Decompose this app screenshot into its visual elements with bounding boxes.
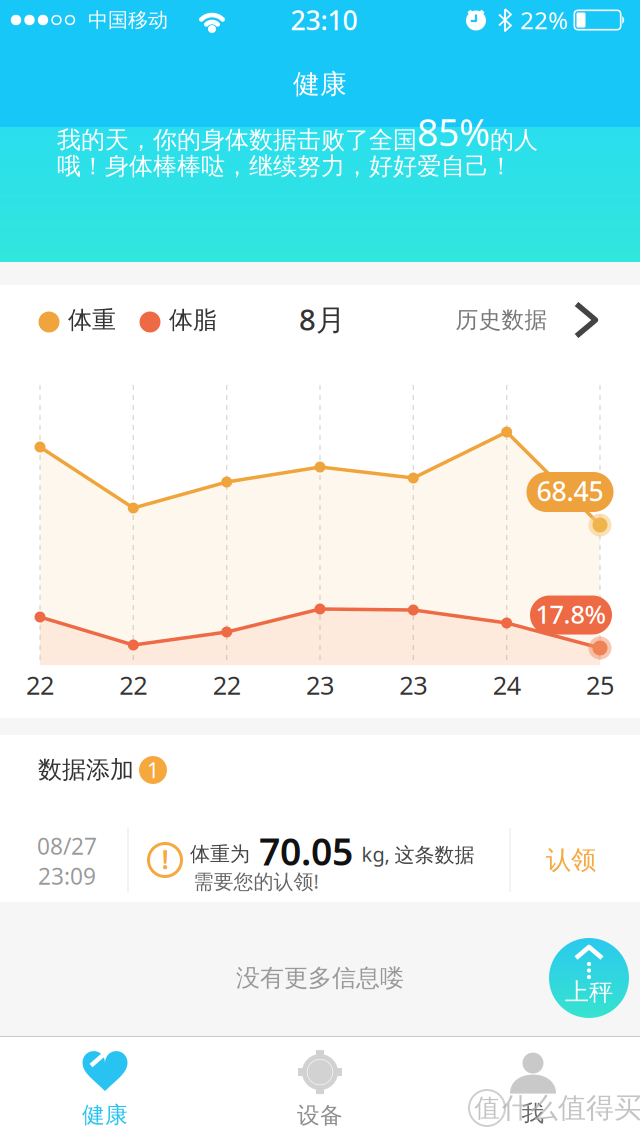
staticText: 22 [213,668,241,702]
staticText: 68.45 [536,473,603,509]
staticText: 数据添加 [38,755,134,784]
staticText: 22% [520,4,568,36]
staticText: 体脂 [169,305,217,335]
staticText: 哦！身体棒棒哒，继续努力，好好爱自己！ [57,152,513,181]
staticText: 24 [493,668,521,702]
staticText: ! [161,841,168,877]
staticText: 中国移动 [88,8,168,32]
staticText: 8月 [299,299,345,338]
button[interactable]: 认领 [516,820,626,900]
button[interactable]: 历史数据 [437,295,617,345]
staticText: 17.8% [535,597,606,631]
staticText: 历史数据 [455,306,547,334]
staticText: 22 [119,668,147,702]
staticText: 健康 [293,68,347,100]
button[interactable]: 设备 [230,1042,410,1136]
button[interactable]: 健康 [15,1042,195,1136]
staticText: 08/27 [37,831,97,861]
button[interactable]: 我 [443,1042,623,1136]
staticText: 健康 [82,1101,128,1129]
staticText: 22 [26,668,54,702]
staticText: 我的天，你的身体数据击败了全国85%的人 [57,107,538,157]
staticText: 1 [147,756,159,784]
staticText: 什么值得买 [502,1091,640,1125]
staticText: 认领 [546,844,596,875]
staticText: 25 [586,668,614,702]
staticText: 23:09 [38,861,96,891]
staticText: 70.05 [259,826,353,876]
staticText: kg, 这条数据 [361,841,474,867]
staticText: 23 [306,668,334,702]
staticText: 体重为 [190,842,250,866]
staticText: 体重 [68,305,116,335]
staticText: 23 [399,668,427,702]
staticText: 上秤 [565,977,613,1007]
button[interactable]: 上秤 [549,938,629,1018]
staticText: 需要您的认领! [193,868,318,894]
staticText: 没有更多信息喽 [236,963,404,993]
staticText: 我 [521,1100,544,1127]
staticText: 23:10 [290,2,357,38]
staticText: 值 [474,1092,499,1123]
staticText: 设备 [297,1102,343,1129]
